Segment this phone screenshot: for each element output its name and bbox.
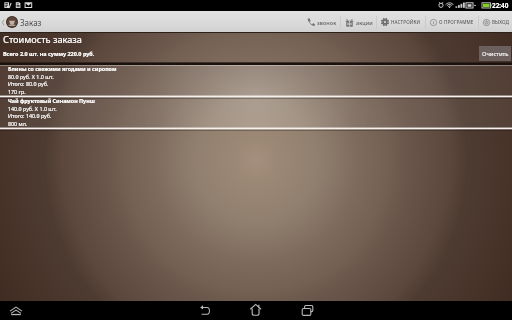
- button[interactable]: Очистить: [479, 46, 511, 61]
- staticText: акции: [356, 19, 373, 26]
- button[interactable]: Home: [242, 301, 269, 320]
- button[interactable]: Блины со свежими ягодами и сиропом: [0, 65, 512, 96]
- staticText: Блины со свежими ягодами и сиропом: [8, 65, 117, 72]
- staticText: 170 гр.: [8, 88, 26, 95]
- button[interactable]: О ПРОГРАММЕ: [426, 11, 476, 33]
- staticText: ВЫХОД: [492, 19, 510, 25]
- button[interactable]: НАСТРОЙКИ: [377, 11, 424, 33]
- staticText: 80.0 руб. X 1.0 шт.: [8, 73, 54, 80]
- staticText: 22:40: [492, 1, 509, 10]
- button[interactable]: акции: [341, 11, 374, 33]
- staticText: Очистить: [482, 50, 509, 58]
- button[interactable]: звонок: [303, 11, 338, 33]
- button[interactable]: ВЫХОД: [479, 11, 510, 33]
- button[interactable]: Hide navigation bar: [4, 301, 28, 320]
- staticText: звонок: [317, 19, 337, 26]
- button[interactable]: Back: [192, 301, 218, 320]
- staticText: 140.0 руб. X 1.0 шт.: [8, 105, 57, 112]
- staticText: Заказ: [20, 17, 42, 28]
- staticText: О ПРОГРАММЕ: [439, 19, 474, 25]
- staticText: Всего 2.0 шт. на сумму 220.0 руб.: [3, 50, 95, 57]
- staticText: Чай фруктовый Синамон Пунш: [8, 97, 95, 104]
- button[interactable]: Чай фруктовый Синамон Пунш: [0, 97, 512, 128]
- staticText: НАСТРОЙКИ: [391, 19, 421, 25]
- button[interactable]: Заказ: [0, 11, 44, 33]
- staticText: Итого: 80.0 руб.: [8, 80, 49, 87]
- staticText: 800 мл.: [8, 120, 28, 127]
- staticText: Стоимость заказа: [3, 33, 82, 46]
- staticText: Итого: 140.0 руб.: [8, 112, 52, 119]
- button[interactable]: Recent apps: [294, 301, 321, 320]
